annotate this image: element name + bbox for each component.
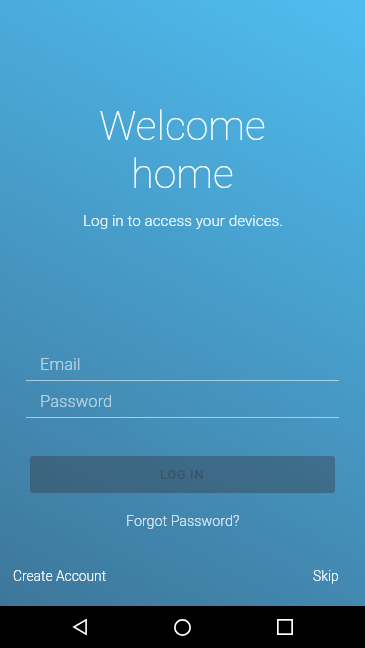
- button[interactable]: Create Account: [0, 560, 120, 592]
- staticText: LOG IN: [160, 467, 205, 482]
- staticText: Forgot Password?: [126, 513, 240, 530]
- button[interactable]: LOG IN: [30, 456, 335, 493]
- button[interactable]: Home: [156, 606, 208, 648]
- button[interactable]: Back: [54, 606, 106, 648]
- staticText: Create Account: [13, 568, 107, 584]
- staticText: Log in to access your devices.: [83, 212, 283, 230]
- button[interactable]: Forgot Password?: [116, 508, 250, 535]
- button[interactable]: Password: [26, 393, 339, 430]
- button[interactable]: Skip: [287, 560, 365, 592]
- staticText: Welcome home: [99, 102, 266, 198]
- button[interactable]: Email: [26, 356, 339, 393]
- button[interactable]: Recent apps: [259, 606, 311, 648]
- staticText: Password: [40, 392, 113, 411]
- staticText: Email: [40, 355, 81, 374]
- staticText: Skip: [313, 568, 339, 584]
